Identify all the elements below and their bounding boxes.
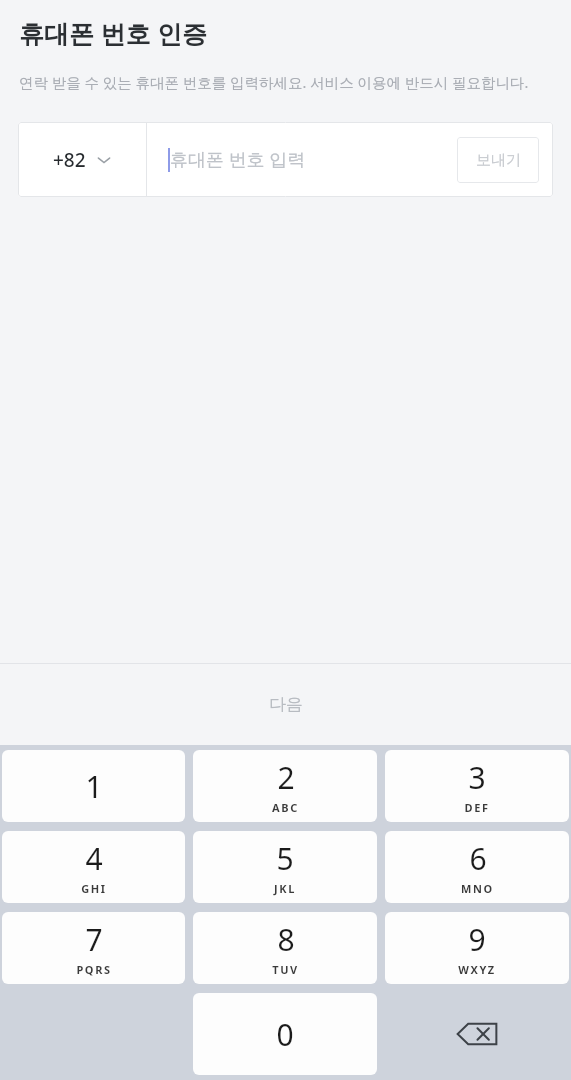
staticText: 9 [468, 919, 486, 960]
staticText: 4 [85, 838, 103, 879]
staticText: MNO [461, 881, 494, 896]
staticText: 5 [276, 838, 294, 879]
staticText: 6 [469, 838, 487, 879]
staticText: 3 [468, 757, 486, 798]
button[interactable]: 휴대폰 번호 입력 [147, 122, 457, 197]
button[interactable]: 다음 [245, 688, 327, 721]
staticText: ABC [272, 800, 299, 815]
button[interactable]: 2 [193, 750, 377, 822]
staticText: 휴대폰 번호 인증 [19, 16, 208, 50]
button[interactable]: +82 [18, 122, 146, 197]
staticText: 7 [85, 919, 103, 960]
button[interactable]: 6 [385, 831, 569, 903]
button[interactable]: Backspace [385, 993, 569, 1075]
button[interactable]: 보내기 [457, 137, 539, 183]
button[interactable]: 3 [385, 750, 569, 822]
button[interactable]: 9 [385, 912, 569, 984]
button[interactable]: 8 [193, 912, 377, 984]
button[interactable]: 1 [2, 750, 185, 822]
staticText: 보내기 [476, 151, 521, 170]
staticText: 2 [277, 757, 295, 798]
staticText: WXYZ [458, 962, 496, 977]
staticText: DEF [464, 800, 490, 815]
staticText: 1 [85, 766, 103, 807]
staticText: +82 [53, 147, 86, 173]
button[interactable]: 4 [2, 831, 185, 903]
staticText: 다음 [269, 694, 303, 715]
staticText: GHI [81, 881, 107, 896]
staticText: 8 [277, 919, 295, 960]
button[interactable]: 7 [2, 912, 185, 984]
button[interactable]: 5 [193, 831, 377, 903]
staticText: TUV [272, 962, 299, 977]
staticText: 휴대폰 번호 입력 [170, 147, 306, 172]
staticText: JKL [274, 881, 296, 896]
staticText: PQRS [76, 962, 112, 977]
button[interactable]: 0 [193, 993, 377, 1075]
staticText: 연락 받을 수 있는 휴대폰 번호를 입력하세요. 서비스 이용에 반드시 필요… [19, 72, 529, 92]
staticText: 0 [276, 1014, 294, 1055]
